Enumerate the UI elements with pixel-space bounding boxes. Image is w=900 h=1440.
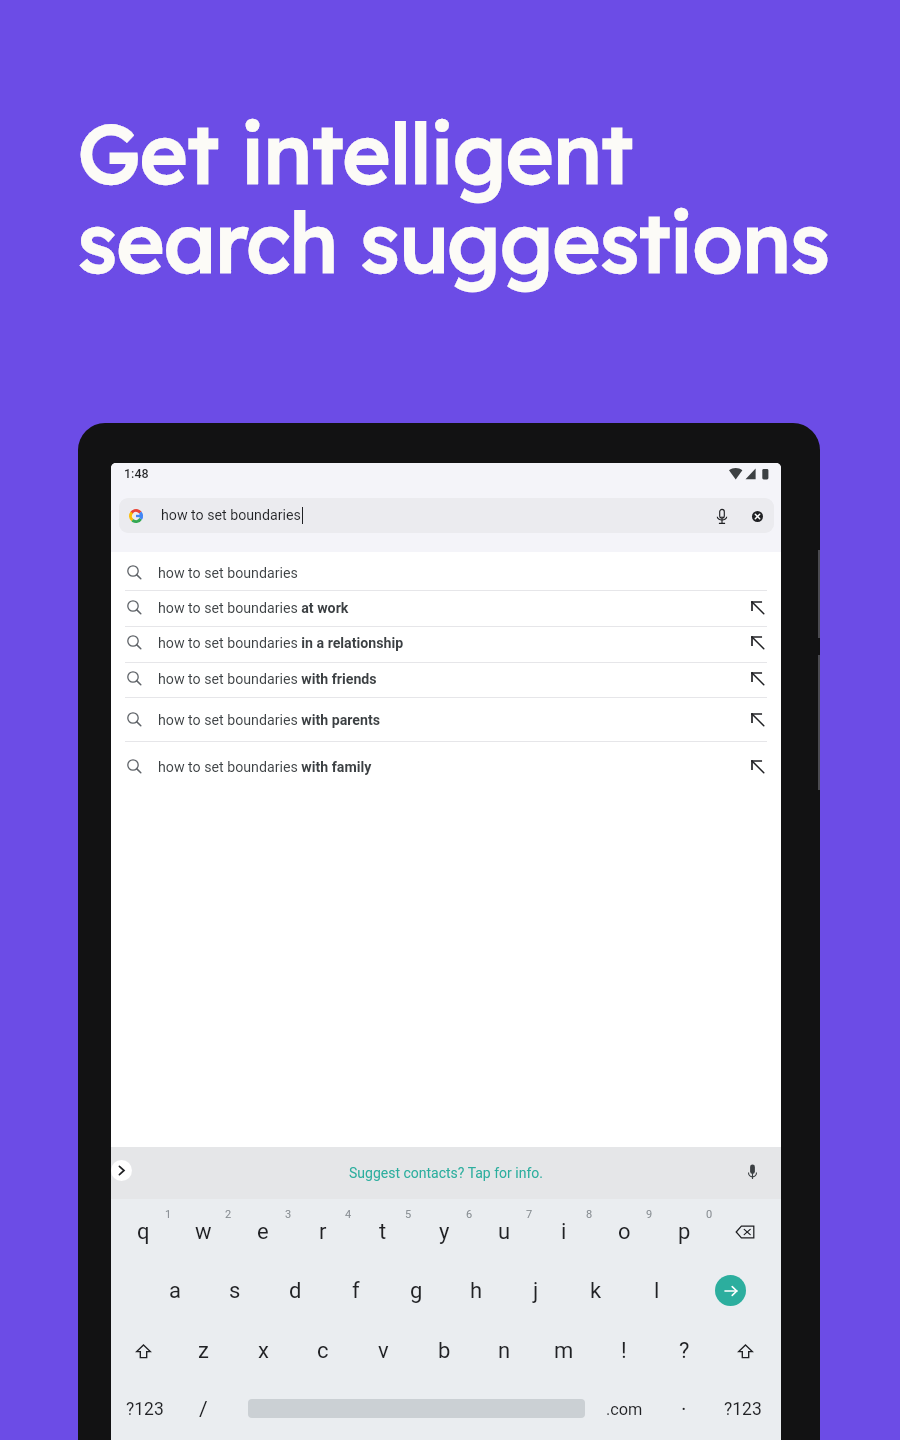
- staticText: 3: [285, 1208, 292, 1220]
- button[interactable]: Shift: [117, 1327, 169, 1375]
- button[interactable]: Use suggestion: [746, 667, 770, 691]
- button[interactable]: Search: [715, 1275, 746, 1306]
- button[interactable]: Voice search: [708, 502, 736, 530]
- button[interactable]: how to set boundaries at work: [111, 591, 781, 625]
- staticText: l: [654, 1278, 660, 1304]
- button[interactable]: r: [297, 1208, 349, 1256]
- button[interactable]: p: [658, 1208, 710, 1256]
- button[interactable]: q: [117, 1208, 169, 1256]
- button[interactable]: o: [598, 1208, 650, 1256]
- button[interactable]: Expand suggestions: [111, 1160, 132, 1181]
- button[interactable]: b: [418, 1327, 470, 1375]
- button[interactable]: how to set boundaries: [111, 556, 781, 590]
- button[interactable]: ?123: [717, 1385, 769, 1433]
- button[interactable]: Clear search: [743, 502, 771, 530]
- button[interactable]: how to set boundaries with parents: [111, 703, 781, 737]
- staticText: u: [498, 1219, 511, 1245]
- staticText: f: [352, 1278, 360, 1304]
- staticText: m: [554, 1338, 574, 1364]
- staticText: 0: [706, 1208, 713, 1220]
- staticText: how to set boundaries: [161, 507, 301, 524]
- staticText: Suggest contacts? Tap for info.: [349, 1165, 543, 1181]
- button[interactable]: Backspace: [719, 1208, 771, 1256]
- button[interactable]: ?123: [119, 1385, 171, 1433]
- button[interactable]: k: [570, 1267, 622, 1315]
- button[interactable]: z: [177, 1327, 229, 1375]
- staticText: 5: [405, 1208, 412, 1220]
- button[interactable]: i: [538, 1208, 590, 1256]
- button[interactable]: d: [269, 1267, 321, 1315]
- button[interactable]: j: [510, 1267, 562, 1315]
- staticText: how to set boundaries with parents: [158, 712, 381, 729]
- staticText: how to set boundaries in a relationship: [158, 635, 404, 652]
- staticText: 8: [586, 1208, 593, 1220]
- button[interactable]: x: [237, 1327, 289, 1375]
- staticText: 9: [646, 1208, 653, 1220]
- button[interactable]: Use suggestion: [746, 755, 770, 779]
- staticText: 2: [225, 1208, 232, 1220]
- button[interactable]: v: [357, 1327, 409, 1375]
- button[interactable]: t: [357, 1208, 409, 1256]
- staticText: 1:48: [124, 466, 149, 481]
- staticText: how to set boundaries with friends: [158, 671, 377, 688]
- staticText: s: [229, 1278, 241, 1304]
- staticText: o: [618, 1219, 631, 1245]
- staticText: p: [678, 1219, 691, 1245]
- button[interactable]: how to set boundaries: [119, 498, 774, 533]
- button[interactable]: l: [631, 1267, 683, 1315]
- staticText: 6: [466, 1208, 473, 1220]
- button[interactable]: h: [450, 1267, 502, 1315]
- button[interactable]: g: [390, 1267, 442, 1315]
- staticText: d: [289, 1278, 302, 1304]
- staticText: .com: [606, 1400, 643, 1419]
- staticText: z: [198, 1338, 209, 1364]
- staticText: n: [498, 1338, 511, 1364]
- button[interactable]: e: [237, 1208, 289, 1256]
- staticText: x: [258, 1338, 269, 1364]
- staticText: k: [590, 1278, 602, 1304]
- staticText: c: [317, 1338, 329, 1364]
- button[interactable]: Voice input: [738, 1159, 766, 1185]
- staticText: g: [410, 1278, 423, 1304]
- staticText: 7: [526, 1208, 533, 1220]
- button[interactable]: ?: [658, 1327, 710, 1375]
- button[interactable]: f: [330, 1267, 382, 1315]
- button[interactable]: how to set boundaries with friends: [111, 662, 781, 696]
- button[interactable]: Use suggestion: [746, 708, 770, 732]
- button[interactable]: !: [598, 1327, 650, 1375]
- staticText: Get intelligent search suggestions: [78, 102, 830, 293]
- button[interactable]: how to set boundaries in a relationship: [111, 626, 781, 660]
- button[interactable]: w: [177, 1208, 229, 1256]
- staticText: e: [257, 1219, 269, 1245]
- button[interactable]: Shift: [719, 1327, 771, 1375]
- button[interactable]: Use suggestion: [746, 631, 770, 655]
- staticText: how to set boundaries at work: [158, 600, 349, 617]
- staticText: a: [169, 1278, 181, 1304]
- staticText: !: [621, 1338, 627, 1364]
- staticText: t: [379, 1219, 387, 1245]
- staticText: r: [319, 1219, 327, 1245]
- button[interactable]: ·: [658, 1385, 710, 1433]
- staticText: h: [470, 1278, 483, 1304]
- button[interactable]: .com: [598, 1385, 650, 1433]
- button[interactable]: u: [478, 1208, 530, 1256]
- staticText: ?123: [724, 1399, 762, 1420]
- staticText: how to set boundaries with family: [158, 759, 372, 776]
- staticText: 4: [345, 1208, 352, 1220]
- button[interactable]: y: [418, 1208, 470, 1256]
- button[interactable]: s: [209, 1267, 261, 1315]
- staticText: how to set boundaries: [158, 565, 298, 582]
- button[interactable]: a: [149, 1267, 201, 1315]
- staticText: /: [199, 1397, 208, 1422]
- staticText: j: [533, 1278, 539, 1304]
- button[interactable]: Use suggestion: [746, 596, 770, 620]
- button[interactable]: c: [297, 1327, 349, 1375]
- staticText: q: [137, 1219, 150, 1245]
- staticText: 1: [165, 1208, 172, 1220]
- staticText: y: [439, 1219, 450, 1245]
- button[interactable]: m: [538, 1327, 590, 1375]
- button[interactable]: /: [177, 1385, 229, 1433]
- button[interactable]: how to set boundaries with family: [111, 750, 781, 784]
- button[interactable]: n: [478, 1327, 530, 1375]
